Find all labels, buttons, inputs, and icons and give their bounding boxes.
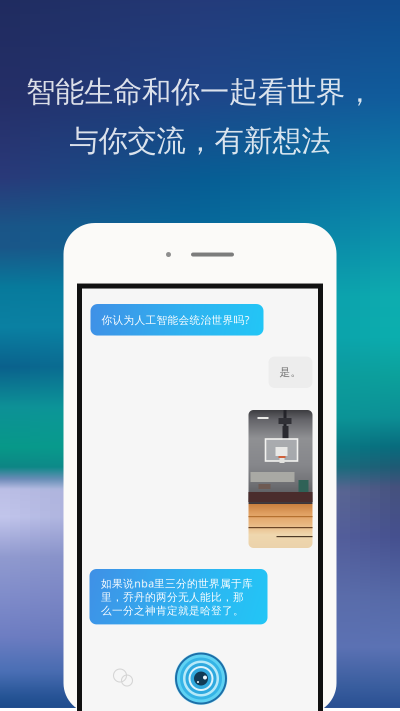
staticText: 智能生命和你一起看世界， [26,74,374,110]
staticText: 你认为人工智能会统治世界吗? [101,312,249,327]
button[interactable]: Messages [111,667,135,689]
staticText: 是。 [279,366,301,379]
staticText: 与你交流，有新想法 [69,123,330,159]
staticText: 如果说nba里三分的世界属于库里，乔丹的两分无人能比，那么一分之神肯定就是哈登了… [101,576,253,617]
button[interactable]: Voice assistant [174,652,227,705]
